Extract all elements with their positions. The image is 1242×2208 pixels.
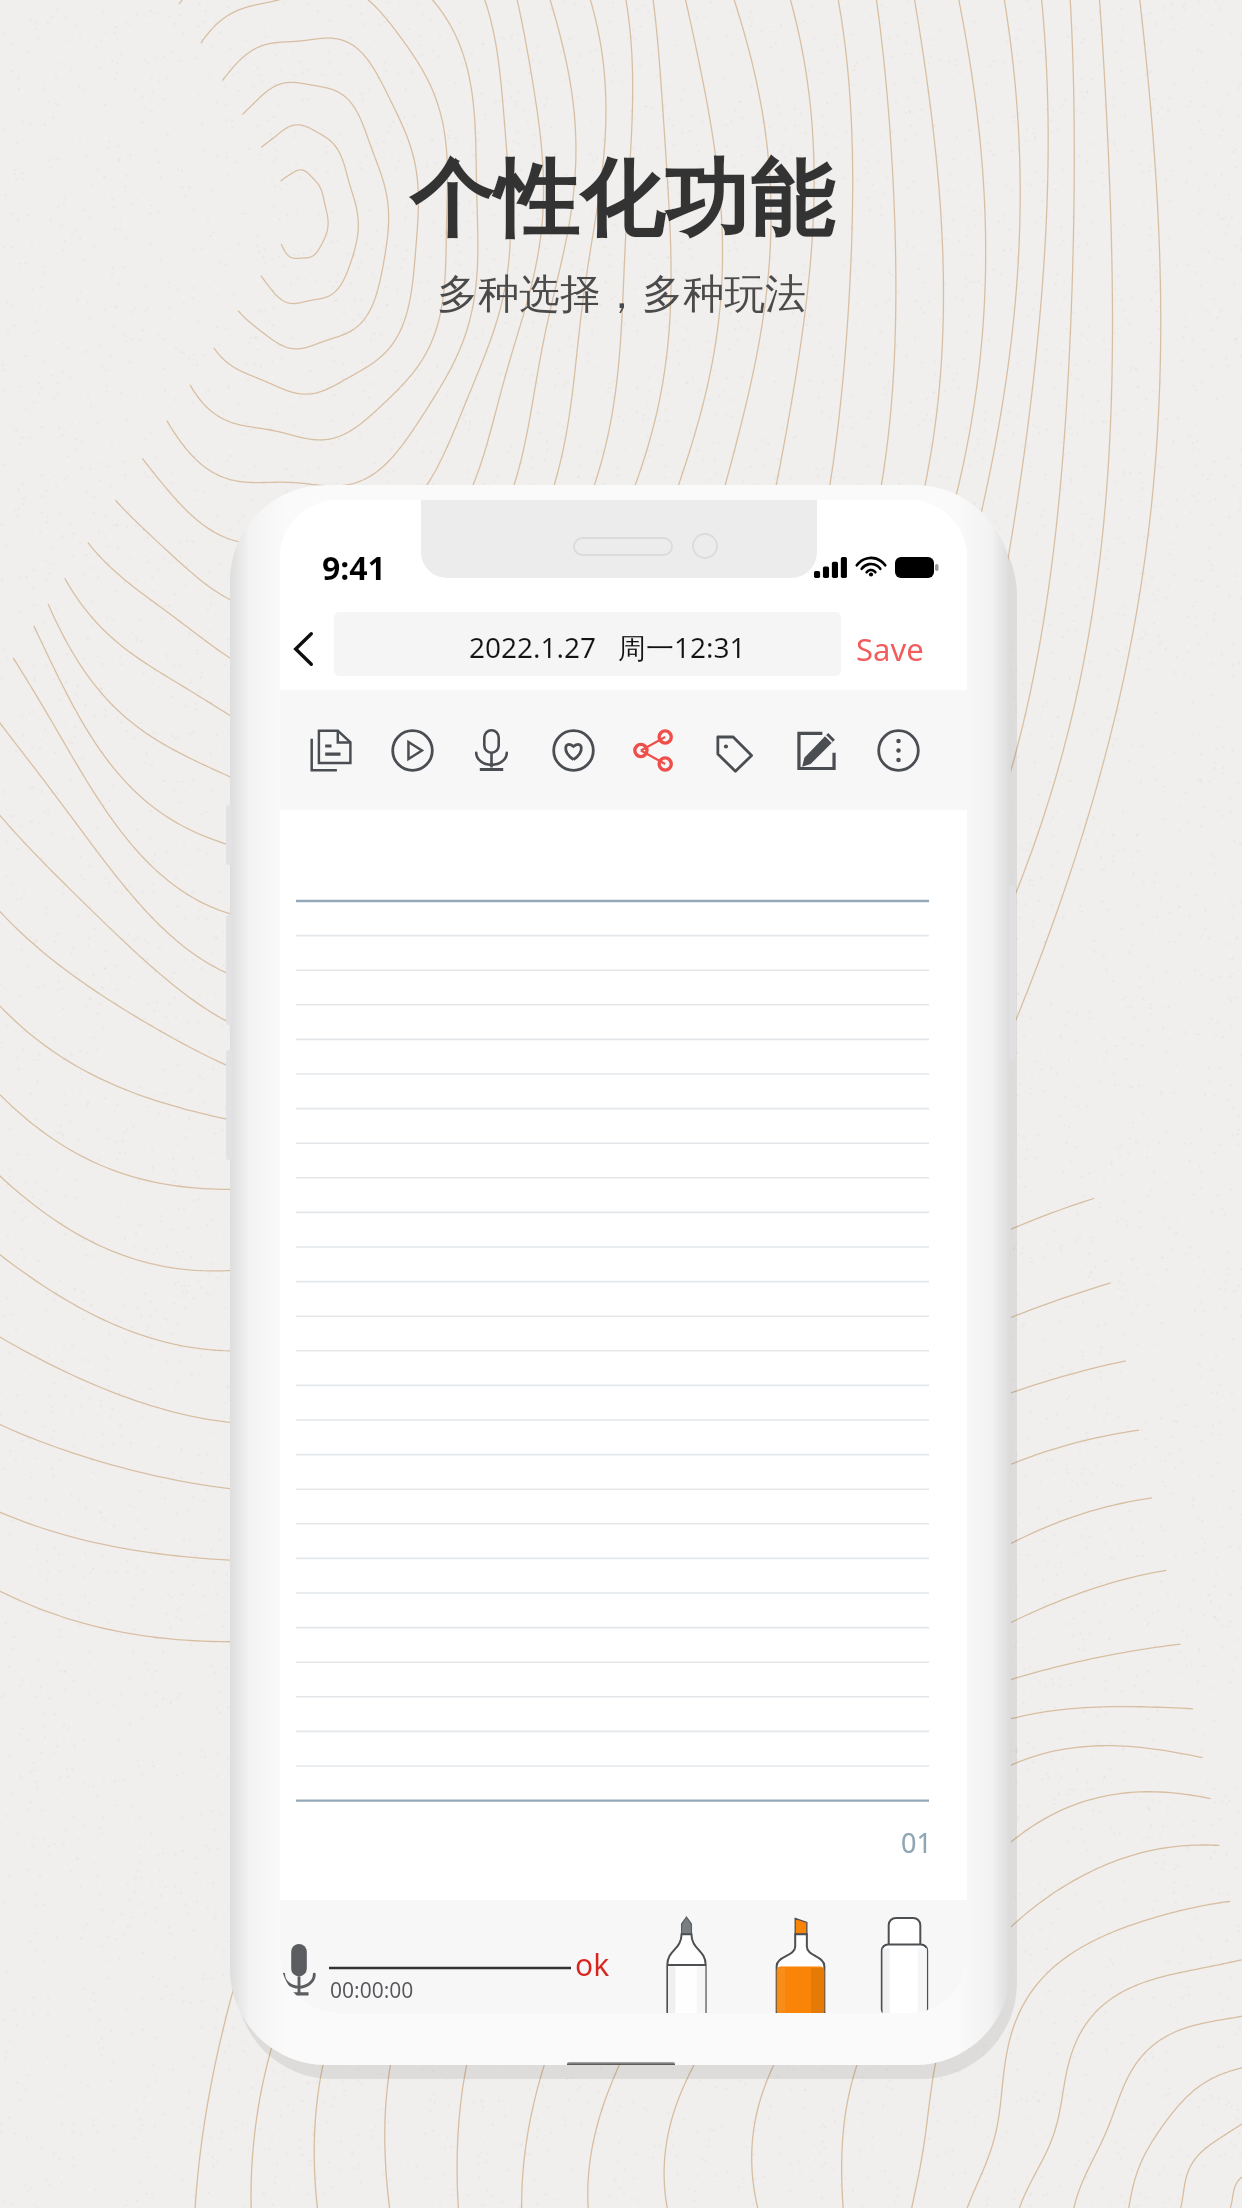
staticText: 01 [901,1824,932,1861]
button[interactable]: Save [834,614,946,684]
button[interactable]: Eraser [865,1905,944,2013]
staticText: Save [856,628,924,670]
button[interactable]: Record audio [280,1938,324,2002]
button[interactable]: Pen [651,1905,722,2013]
staticText: 多种选择，多种玩法 [437,269,806,321]
button[interactable]: Tag [694,690,774,810]
button[interactable]: 2022.1.27 周一12:31 [334,612,841,676]
button[interactable]: Document [291,690,371,810]
button[interactable]: Highlighter [760,1905,841,2013]
button[interactable]: Share [613,690,693,810]
staticText: 2022.1.27 周一12:31 [469,628,746,666]
button[interactable]: Back [280,619,331,679]
button[interactable]: Record [451,690,531,810]
button[interactable]: Favorite [533,690,613,810]
button[interactable]: More [858,690,938,810]
staticText: ok [575,1944,610,1984]
staticText: 个性化功能 [409,147,834,253]
staticText: 00:00:00 [330,1976,414,2005]
staticText: 9:41 [322,546,386,590]
button[interactable]: Edit [776,690,856,810]
button[interactable]: Play [372,690,452,810]
button[interactable]: ok [575,1944,615,1984]
